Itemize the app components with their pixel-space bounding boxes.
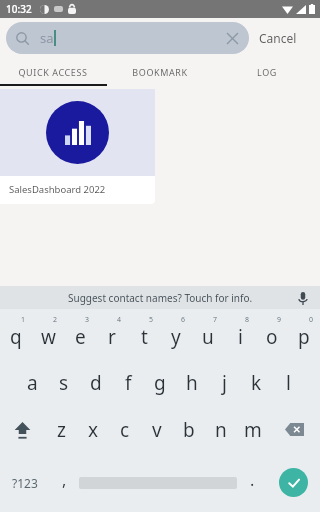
staticText: sa <box>40 29 54 47</box>
staticText: ?123 <box>12 475 38 491</box>
staticText: v <box>152 417 162 443</box>
staticText: i <box>238 324 243 350</box>
staticText: 4 <box>117 315 122 325</box>
staticText: y <box>171 324 181 350</box>
staticText: r <box>108 324 116 350</box>
staticText: g <box>154 370 166 396</box>
staticText: QUICK ACCESS <box>18 66 88 78</box>
button[interactable]: m <box>237 406 269 453</box>
button[interactable]: 1 <box>0 309 32 359</box>
button[interactable]: f <box>112 359 144 406</box>
button[interactable]: QUICK ACCESS <box>0 58 106 86</box>
button[interactable]: 8 <box>224 309 256 359</box>
button[interactable]: Voice input <box>293 288 313 308</box>
button[interactable]: h <box>176 359 208 406</box>
button[interactable]: g <box>144 359 176 406</box>
staticText: 6 <box>181 315 186 325</box>
staticText: 1 <box>21 315 26 325</box>
staticText: p <box>298 324 310 350</box>
button[interactable]: c <box>109 406 141 453</box>
button[interactable]: Backspace <box>269 406 320 453</box>
staticText: x <box>88 417 99 443</box>
staticText: l <box>286 370 291 396</box>
staticText: e <box>75 324 86 350</box>
staticText: b <box>183 417 195 443</box>
button[interactable]: Shift <box>0 406 45 453</box>
button[interactable]: 5 <box>128 309 160 359</box>
staticText: t <box>141 324 148 350</box>
button[interactable]: 6 <box>160 309 192 359</box>
staticText: , <box>62 469 67 491</box>
button[interactable]: LOG <box>213 58 320 86</box>
button[interactable]: Space <box>79 453 237 512</box>
staticText: f <box>125 370 132 396</box>
button[interactable]: Enter <box>267 453 320 512</box>
button[interactable]: s <box>48 359 80 406</box>
staticText: 5 <box>149 315 154 325</box>
staticText: q <box>10 324 22 350</box>
staticText: 7 <box>213 315 218 325</box>
staticText: Cancel <box>259 30 297 46</box>
button[interactable]: Suggest contact names? Touch for info. <box>0 286 320 309</box>
button[interactable]: Cancel <box>249 18 307 58</box>
button[interactable]: n <box>205 406 237 453</box>
button[interactable]: j <box>208 359 240 406</box>
staticText: n <box>215 417 227 443</box>
button[interactable]: SalesDashboard 2022 <box>0 89 155 204</box>
staticText: 8 <box>245 315 250 325</box>
staticText: a <box>27 370 38 396</box>
button[interactable]: v <box>141 406 173 453</box>
staticText: w <box>41 324 56 350</box>
button[interactable]: x <box>77 406 109 453</box>
staticText: 0 <box>309 315 314 325</box>
button[interactable]: 3 <box>64 309 96 359</box>
staticText: SalesDashboard 2022 <box>9 183 106 196</box>
staticText: m <box>244 417 262 443</box>
button[interactable]: z <box>45 406 77 453</box>
staticText: 10:32 <box>6 2 32 16</box>
button[interactable]: ?123 <box>0 453 49 512</box>
staticText: h <box>186 370 198 396</box>
staticText: 3 <box>85 315 90 325</box>
button[interactable]: 7 <box>192 309 224 359</box>
button[interactable]: 9 <box>256 309 288 359</box>
staticText: d <box>90 370 102 396</box>
staticText: BOOKMARK <box>132 66 188 78</box>
staticText: k <box>251 370 262 396</box>
button[interactable]: l <box>272 359 304 406</box>
staticText: . <box>250 469 255 491</box>
button[interactable]: b <box>173 406 205 453</box>
button[interactable]: a <box>16 359 48 406</box>
button[interactable]: 4 <box>96 309 128 359</box>
staticText: j <box>222 370 227 396</box>
button[interactable]: , <box>49 453 79 512</box>
staticText: z <box>57 417 66 443</box>
button[interactable]: 0 <box>288 309 320 359</box>
staticText: LOG <box>257 66 277 78</box>
staticText: 9 <box>277 315 282 325</box>
staticText: s <box>59 370 69 396</box>
staticText: 2 <box>53 315 58 325</box>
button[interactable]: BOOKMARK <box>106 58 213 86</box>
button[interactable]: Clear search <box>219 25 245 51</box>
staticText: c <box>120 417 130 443</box>
staticText: u <box>202 324 214 350</box>
button[interactable]: d <box>80 359 112 406</box>
button[interactable]: . <box>237 453 267 512</box>
button[interactable]: 2 <box>32 309 64 359</box>
staticText: o <box>266 324 278 350</box>
button[interactable]: k <box>240 359 272 406</box>
button[interactable]: sa <box>6 22 249 54</box>
staticText: Suggest contact names? Touch for info. <box>68 291 253 305</box>
